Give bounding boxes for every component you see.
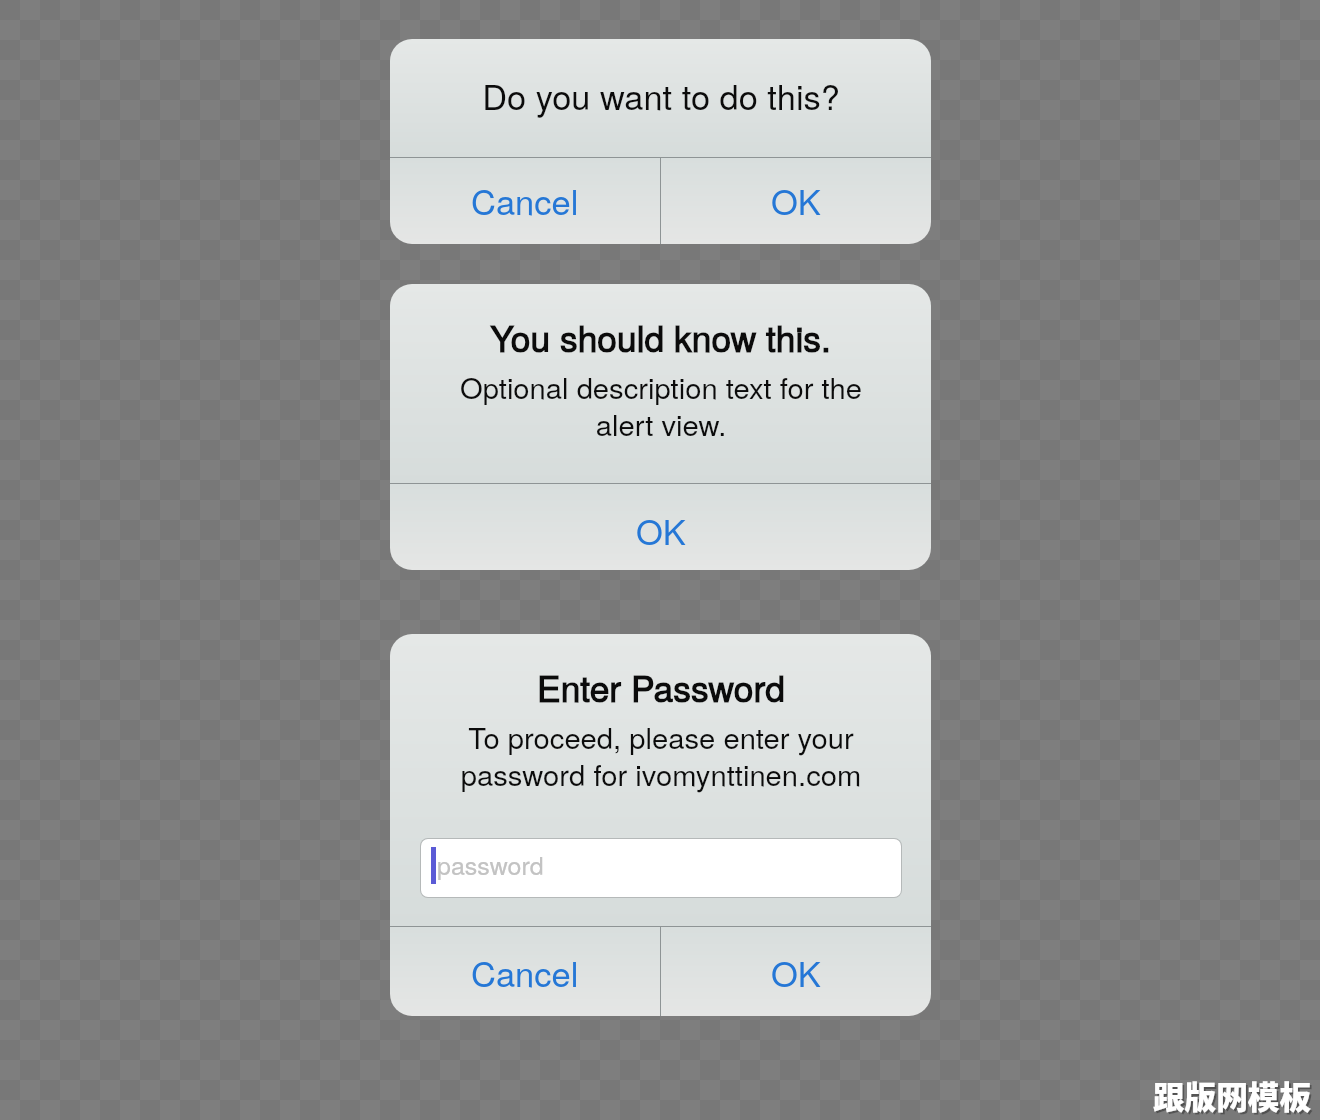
staticText: Do you want to do this? (482, 71, 840, 120)
staticText: To proceed, please enter your password f… (451, 715, 871, 795)
staticText: OK (771, 175, 821, 224)
staticText: You should know this. (490, 311, 831, 362)
staticText: Cancel (471, 947, 579, 996)
staticText: OK (771, 947, 821, 996)
staticText: 跟版网模板 (1153, 1072, 1311, 1118)
button[interactable]: Password entry field (421, 839, 901, 897)
staticText: OK (636, 505, 686, 554)
staticText: Optional description text for the alert … (451, 365, 871, 445)
staticText: 跟版网模板 (1155, 1074, 1313, 1120)
button[interactable]: OK (661, 927, 931, 1016)
button[interactable]: Cancel (390, 158, 660, 244)
button[interactable]: Cancel (390, 927, 660, 1016)
staticText: password (437, 846, 544, 882)
staticText: Enter Password (537, 661, 785, 712)
staticText: Cancel (471, 175, 579, 224)
button[interactable]: OK (390, 484, 931, 570)
button[interactable]: OK (661, 158, 931, 244)
